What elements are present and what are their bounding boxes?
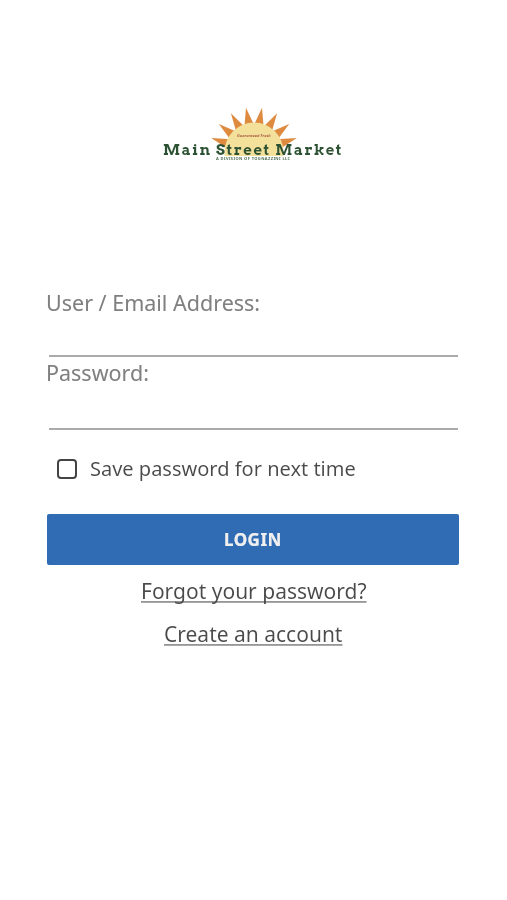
staticText: Main Street Market xyxy=(163,141,344,159)
button[interactable]: Save password for next time xyxy=(57,455,356,482)
button[interactable]: Create an account xyxy=(164,620,343,649)
staticText: Forgot your password? xyxy=(141,577,367,606)
staticText: LOGIN xyxy=(224,528,282,551)
staticText: User / Email Address: xyxy=(46,288,261,317)
staticText: A DIVISION OF TOGNAZZINI LLC xyxy=(216,156,291,161)
staticText: Guaranteed Fresh xyxy=(237,133,271,138)
staticText: Create an account xyxy=(164,620,343,649)
button[interactable]: Forgot your password? xyxy=(141,577,367,606)
staticText: Password: xyxy=(46,358,150,387)
staticText: Save password for next time xyxy=(90,455,356,482)
button[interactable]: LOGIN xyxy=(47,514,459,565)
